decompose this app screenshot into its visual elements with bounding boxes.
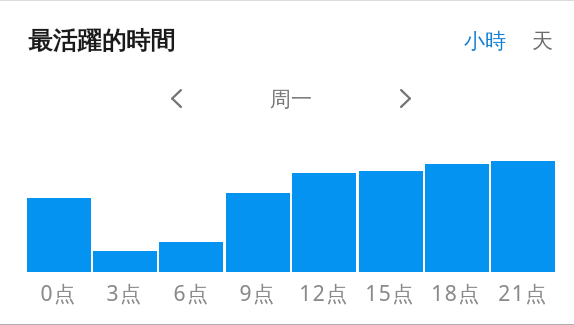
button[interactable]: 天 [526, 25, 558, 57]
button[interactable]: Previous day [160, 80, 192, 116]
staticText: 周一 [270, 86, 312, 112]
button[interactable]: Next day [389, 80, 421, 116]
staticText: 6点 [173, 279, 210, 308]
button[interactable]: 周一 [251, 82, 331, 116]
staticText: 天 [532, 28, 553, 54]
staticText: 18点 [431, 279, 481, 308]
staticText: 12点 [299, 279, 349, 308]
staticText: 9点 [239, 279, 276, 308]
staticText: 0点 [40, 279, 77, 308]
staticText: 21点 [498, 279, 548, 308]
staticText: 最活躍的時間 [28, 25, 175, 56]
button[interactable]: 最活躍的時間 [20, 19, 184, 59]
staticText: 小時 [464, 28, 506, 54]
button[interactable]: 小時 [459, 25, 511, 57]
staticText: 15点 [365, 279, 415, 308]
staticText: 3点 [106, 279, 143, 308]
